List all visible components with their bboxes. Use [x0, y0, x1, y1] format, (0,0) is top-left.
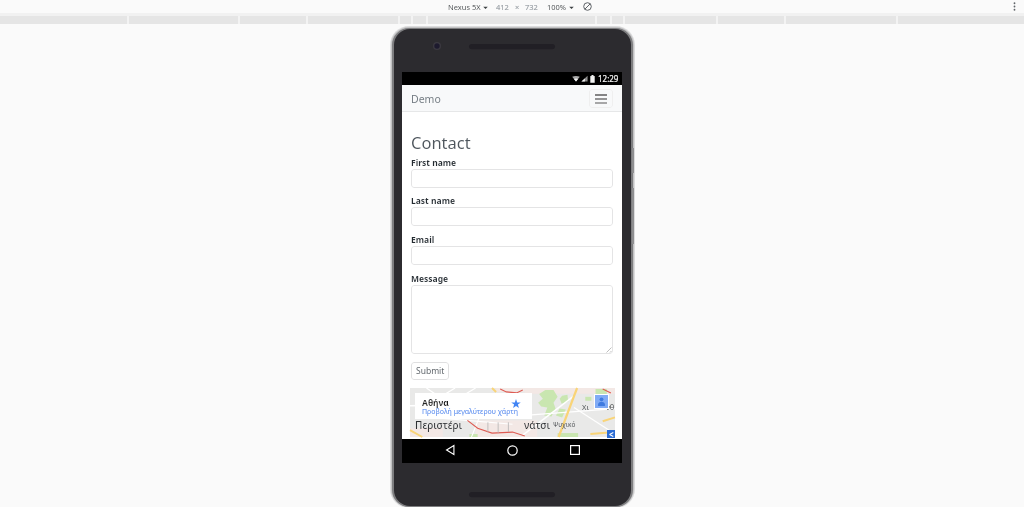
staticText: Ψυχικό: [553, 420, 576, 429]
staticText: Αθήνα: [422, 397, 449, 409]
staticText: 732: [525, 2, 538, 12]
staticText: Προβολή μεγαλύτερου χάρτη: [422, 407, 518, 417]
button[interactable]: Street View: [594, 394, 609, 409]
staticText: Nexus 5X: [448, 2, 481, 12]
staticText: ×: [515, 2, 520, 12]
staticText: Contact: [411, 131, 471, 153]
staticText: Last name: [411, 195, 455, 207]
staticText: 100%: [547, 2, 567, 12]
button[interactable]: Back: [435, 438, 465, 462]
button[interactable]: Nexus 5X: [448, 2, 488, 12]
button[interactable]: Submit: [411, 362, 449, 380]
staticText: Submit: [416, 365, 445, 377]
button[interactable]: Recent apps: [560, 438, 590, 462]
button[interactable]: Demo: [411, 92, 441, 106]
staticText: νθ: [606, 402, 615, 412]
staticText: Χι: [582, 402, 589, 412]
button[interactable]: [411, 285, 613, 354]
staticText: Περιστέρι: [415, 418, 463, 432]
button[interactable]: [411, 169, 613, 188]
button[interactable]: More options: [1008, 0, 1020, 13]
staticText: 412: [496, 2, 509, 12]
button[interactable]: Home: [497, 438, 527, 462]
staticText: νάτσι: [524, 418, 551, 432]
staticText: Demo: [411, 92, 441, 106]
button[interactable]: [411, 207, 613, 226]
staticText: 12:29: [598, 73, 619, 84]
button[interactable]: Toggle navigation: [589, 89, 613, 108]
button[interactable]: 100%: [547, 2, 574, 12]
staticText: Email: [411, 234, 435, 246]
button[interactable]: Αθήνα: [415, 393, 532, 419]
button[interactable]: Open in Google Maps: [607, 430, 615, 438]
button[interactable]: Throttling: [582, 1, 593, 12]
staticText: First name: [411, 157, 457, 169]
button[interactable]: [411, 246, 613, 265]
staticText: Message: [411, 273, 449, 285]
